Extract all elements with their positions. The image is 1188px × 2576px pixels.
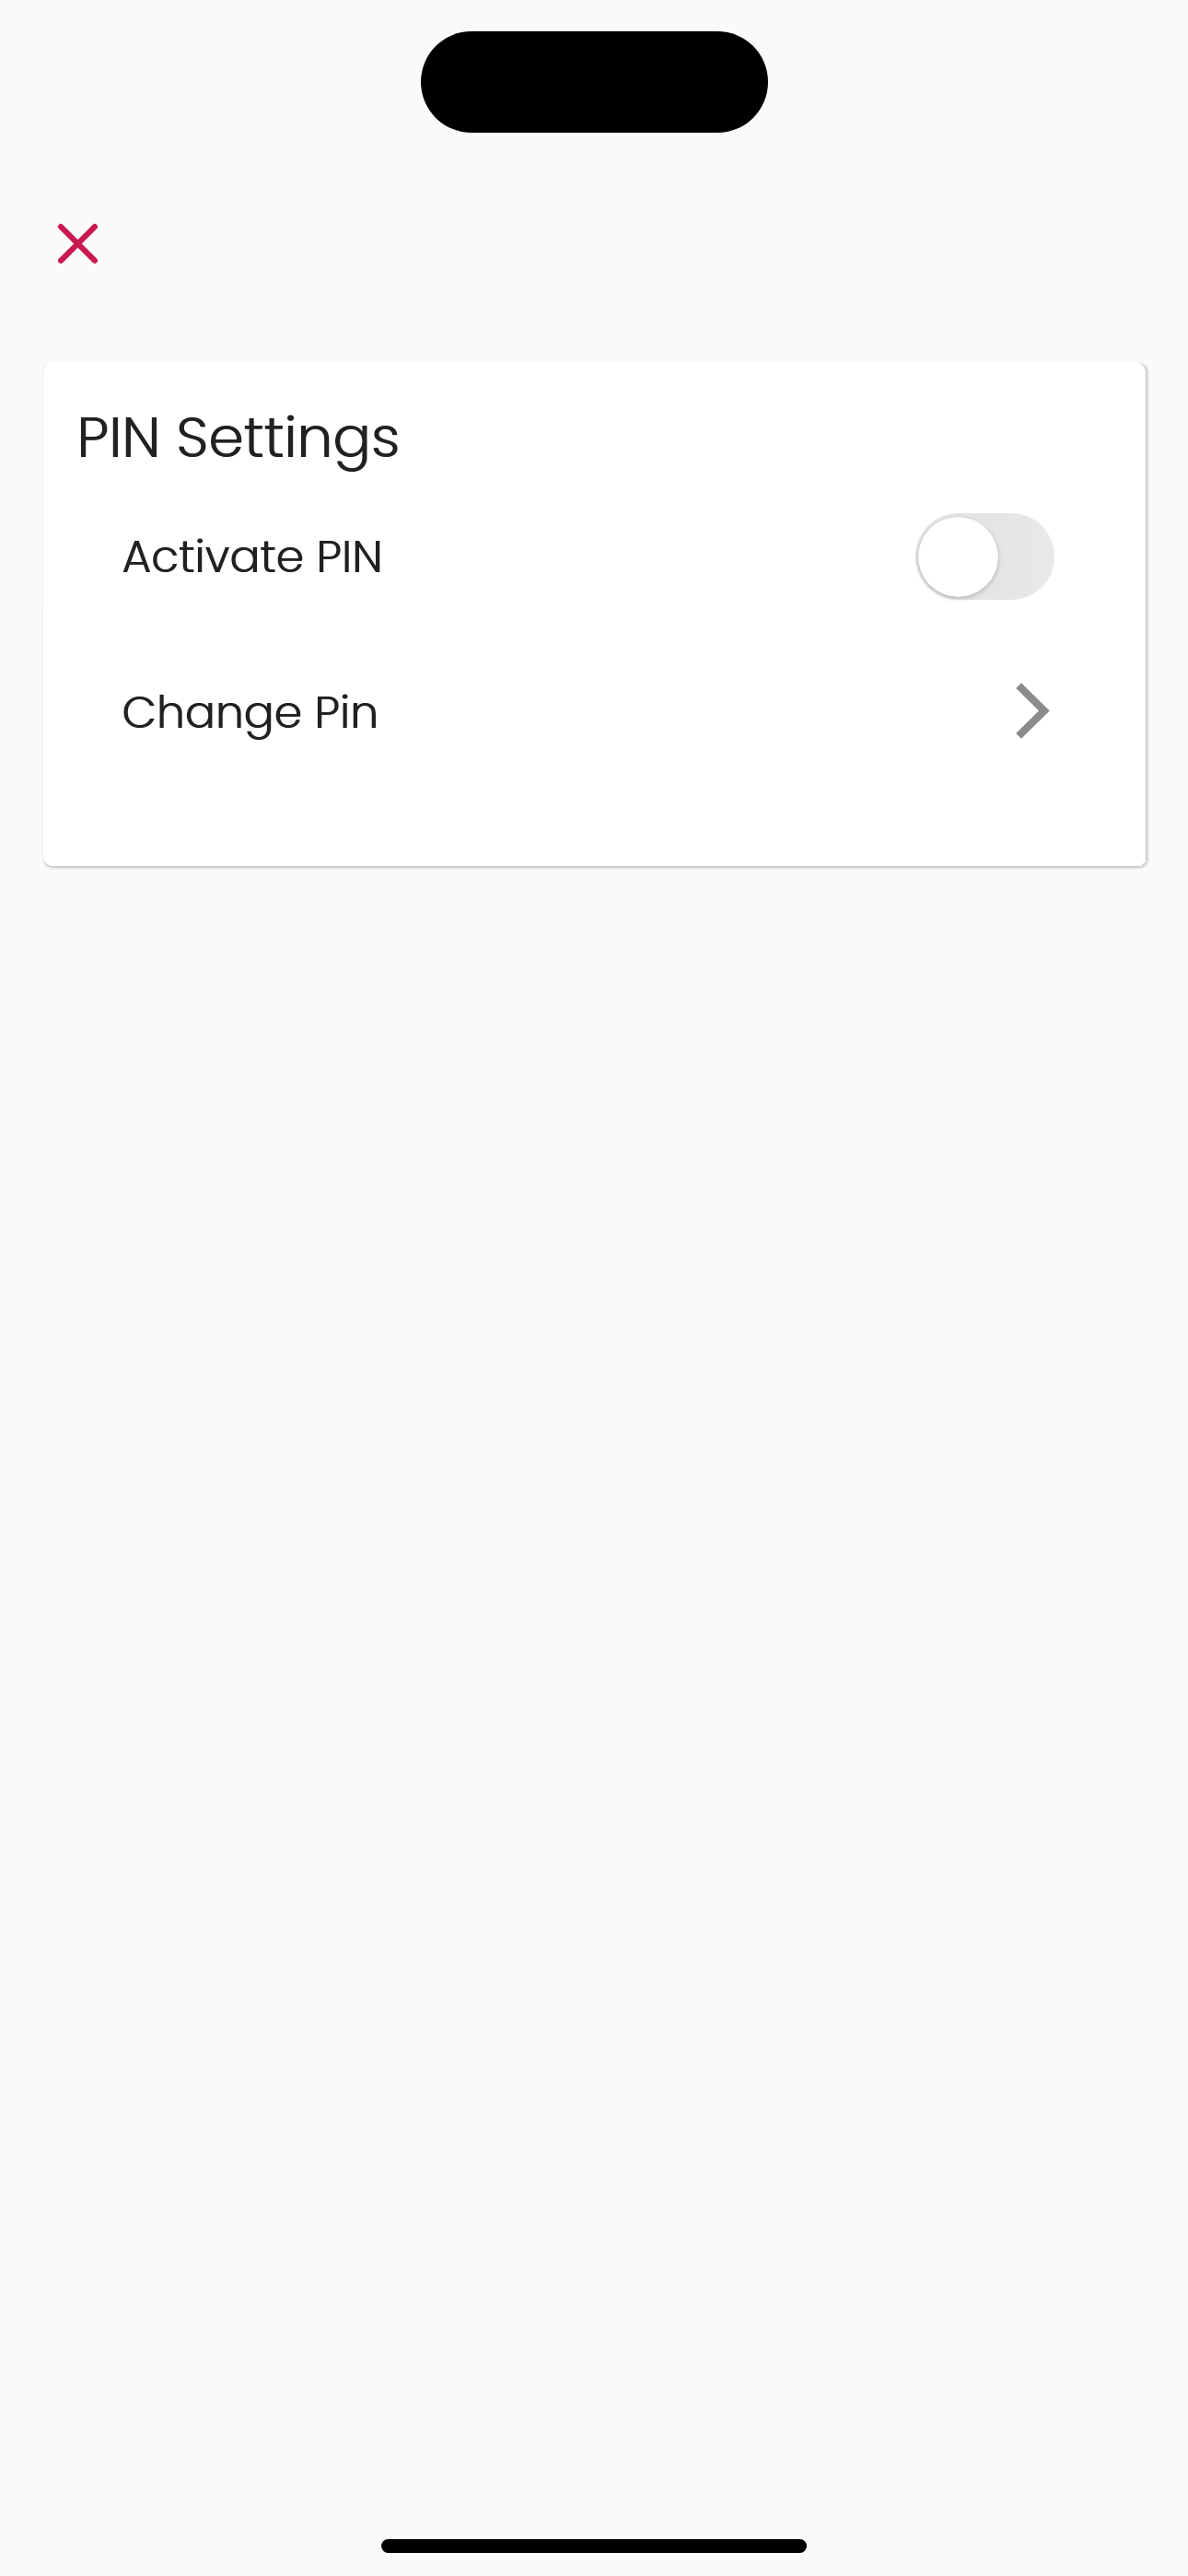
staticText: Change Pin xyxy=(122,681,379,744)
button[interactable]: Change Pin xyxy=(43,652,1145,772)
button[interactable]: Close xyxy=(29,195,125,291)
button[interactable]: Activate PIN xyxy=(915,513,1054,600)
staticText: PIN Settings xyxy=(76,397,400,476)
staticText: Activate PIN xyxy=(122,525,383,588)
button[interactable]: Activate PIN xyxy=(43,497,1145,616)
button[interactable]: Change Pin xyxy=(1015,675,1048,749)
